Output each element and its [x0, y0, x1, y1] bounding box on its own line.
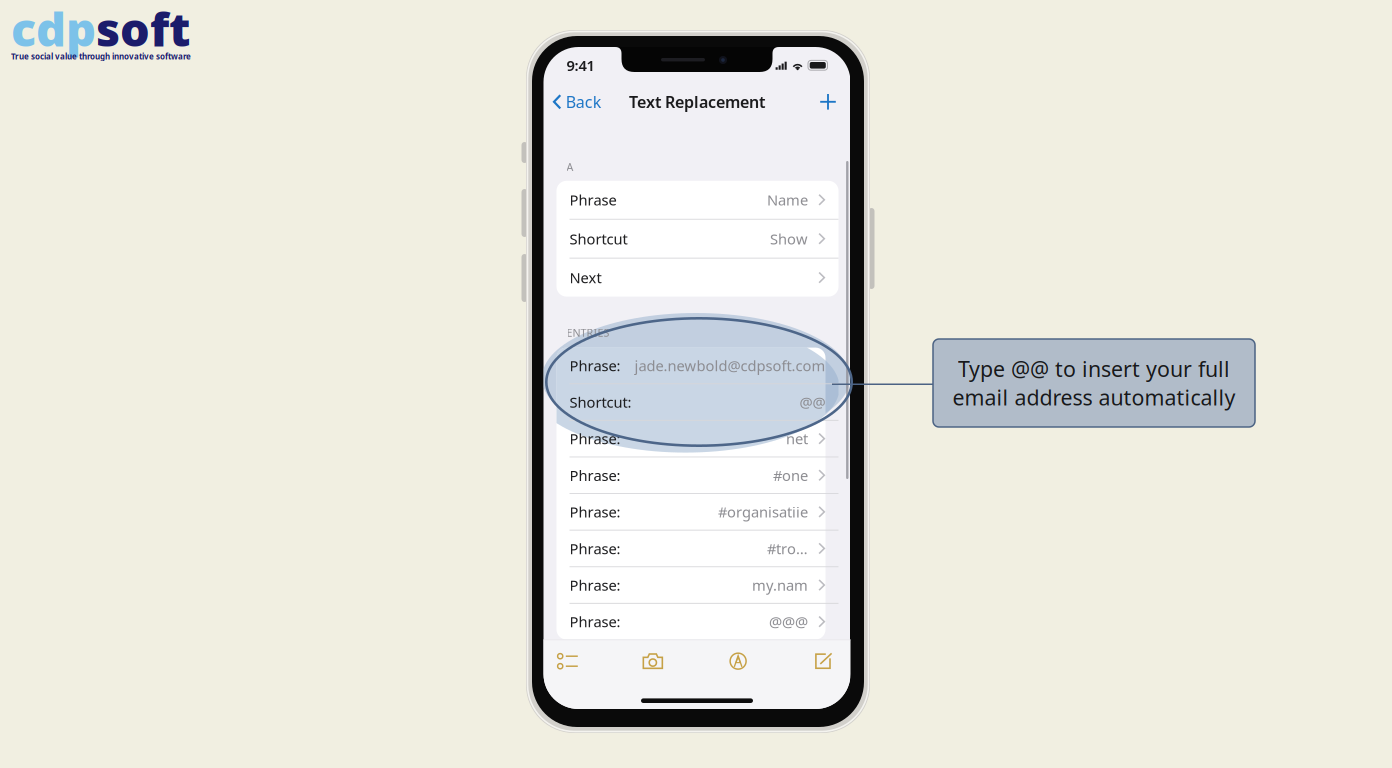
button[interactable]: Phrase [556, 181, 838, 219]
staticText: Phrase: [569, 575, 620, 595]
button[interactable]: Back [543, 83, 602, 120]
button[interactable]: Phrase: [556, 348, 838, 383]
staticText: 9:41 [566, 56, 594, 75]
staticText: Type @@ to insert your full [958, 355, 1230, 383]
button[interactable]: Phrase: [556, 421, 838, 456]
staticText: True social value through innovative sof… [11, 51, 191, 62]
button[interactable]: Shortcut [556, 220, 838, 258]
staticText: Show [770, 229, 808, 248]
staticText: Text Replacement [629, 91, 765, 112]
button[interactable]: Phrase: [556, 494, 838, 530]
staticText: Phrase: [569, 356, 620, 375]
staticText: A [566, 160, 573, 174]
button[interactable]: Add [819, 85, 850, 118]
staticText: ENTRIES [566, 325, 609, 340]
staticText: #tro… [767, 539, 808, 558]
button[interactable]: Phrase: [556, 457, 838, 493]
staticText: Back [566, 91, 602, 112]
button[interactable]: List [543, 646, 591, 676]
staticText: cdp [11, 0, 96, 59]
staticText: Phrase: [569, 465, 620, 485]
staticText: Shortcut: [569, 392, 631, 412]
staticText: email address automatically [952, 383, 1235, 411]
staticText: Phrase: [569, 429, 620, 448]
staticText: Next [569, 268, 601, 287]
staticText: net [786, 429, 808, 448]
button[interactable]: Compose [799, 646, 847, 676]
staticText: Shortcut [569, 229, 627, 248]
button[interactable]: Markup [714, 646, 762, 676]
staticText: @@ [799, 392, 825, 412]
button[interactable]: Camera [629, 646, 677, 676]
staticText: #organisatiie [718, 502, 808, 522]
button[interactable]: Next [556, 259, 838, 297]
staticText: Phrase: [569, 539, 620, 558]
staticText: jade.newbold@cdpsoft.com [634, 356, 825, 375]
staticText: my.nam [752, 575, 808, 595]
button[interactable]: Phrase: [556, 531, 838, 566]
staticText: Phrase: [569, 612, 620, 631]
staticText: Phrase [569, 190, 616, 210]
staticText: @@@ [769, 612, 808, 631]
staticText: Phrase: [569, 502, 620, 522]
staticText: soft [96, 0, 190, 59]
staticText: Name [767, 190, 808, 210]
staticText: #one [773, 465, 808, 485]
button[interactable]: Phrase: [556, 604, 838, 639]
button[interactable]: Phrase: [556, 567, 838, 603]
button[interactable]: Shortcut: [556, 384, 838, 420]
